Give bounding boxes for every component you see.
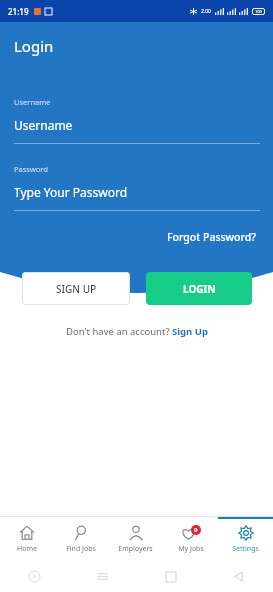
button[interactable]: 0 — [163, 517, 218, 561]
staticText: Username — [14, 97, 51, 107]
staticText: Find Jobs — [66, 544, 96, 554]
other: Home — [166, 572, 176, 582]
staticText: 21:19 — [8, 6, 29, 17]
staticText: My Jobs — [178, 544, 204, 554]
other: Back — [233, 571, 244, 582]
other: Recents — [97, 571, 108, 582]
button[interactable]: Sign Up — [172, 325, 208, 338]
staticText: 100 — [255, 9, 262, 14]
button[interactable]: Forgot Password? — [163, 226, 260, 248]
other: Assistant — [29, 571, 40, 582]
staticText: Username — [14, 117, 73, 133]
button[interactable]: Employers — [108, 517, 163, 561]
staticText: Forgot Password? — [167, 230, 256, 244]
staticText: Login — [14, 36, 54, 56]
staticText: Home — [17, 544, 37, 554]
button[interactable]: SIGN UP — [22, 272, 130, 305]
staticText: Settings — [232, 544, 259, 554]
button[interactable]: Find Jobs — [54, 517, 108, 561]
staticText: Don't have an account? — [66, 325, 172, 338]
staticText: 2.00 — [201, 8, 211, 15]
staticText: LOGIN — [183, 282, 216, 296]
button[interactable]: LOGIN — [146, 272, 252, 305]
button[interactable]: Home — [0, 517, 54, 561]
staticText: Password — [14, 164, 48, 174]
staticText: Employers — [118, 544, 153, 554]
staticText: SIGN UP — [56, 282, 97, 296]
staticText: Type Your Password — [14, 184, 128, 200]
staticText: 0 — [194, 526, 198, 534]
staticText: Sign Up — [172, 325, 208, 338]
button[interactable]: Settings — [218, 517, 273, 561]
